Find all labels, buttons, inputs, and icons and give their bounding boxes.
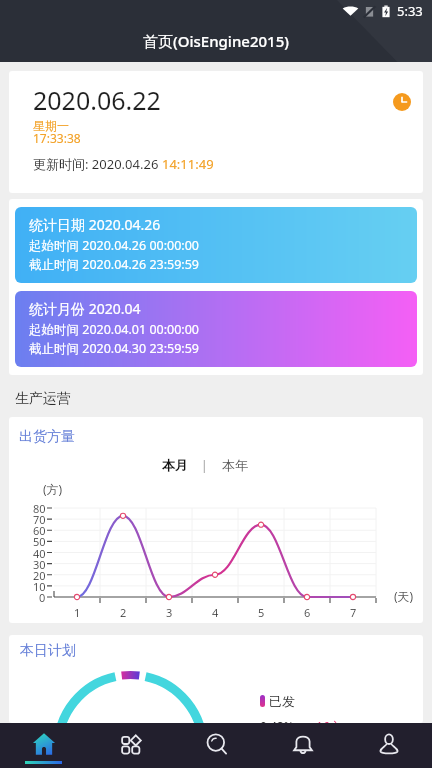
staticText: 本月 bbox=[162, 457, 188, 473]
staticText: 80 bbox=[33, 501, 46, 516]
staticText: 已发 bbox=[269, 693, 295, 709]
button[interactable]: Apps bbox=[87, 723, 174, 768]
staticText: 50 bbox=[33, 534, 46, 549]
staticText: 首页(OisEngine2015) bbox=[143, 31, 289, 51]
staticText: 10 bbox=[33, 579, 46, 594]
staticText: (天) bbox=[394, 588, 414, 604]
staticText: 17:33:38 bbox=[33, 130, 81, 146]
staticText: 70 bbox=[33, 512, 46, 527]
button[interactable]: 本月 bbox=[156, 454, 201, 476]
staticText: 14:11:49 bbox=[162, 155, 214, 173]
staticText: (方) bbox=[43, 481, 63, 497]
staticText: 3 bbox=[166, 605, 173, 620]
staticText: 星期一 bbox=[33, 118, 69, 133]
staticText: 0 bbox=[39, 590, 46, 605]
staticText: 截止时间 2020.04.26 23:59:59 bbox=[29, 256, 200, 273]
button[interactable]: 统计月份 2020.04 bbox=[15, 291, 417, 367]
button[interactable]: Clock bbox=[393, 93, 411, 111]
staticText: 1 bbox=[74, 605, 81, 620]
button[interactable]: Home bbox=[0, 723, 87, 768]
button[interactable]: 2020.06.22 bbox=[9, 71, 423, 193]
button[interactable]: Search bbox=[174, 723, 260, 768]
staticText: 4 bbox=[212, 605, 219, 620]
button[interactable]: 出货方量 bbox=[19, 428, 75, 446]
staticText: 0.43% bbox=[260, 718, 294, 723]
button[interactable]: 统计日期 2020.04.26 bbox=[15, 207, 417, 283]
staticText: 截止时间 2020.04.30 23:59:59 bbox=[29, 340, 200, 357]
staticText: 16方 bbox=[316, 718, 342, 723]
staticText: | bbox=[201, 457, 208, 473]
staticText: 统计日期 2020.04.26 bbox=[29, 215, 161, 234]
staticText: 5:33 bbox=[397, 2, 423, 20]
staticText: 统计月份 2020.04 bbox=[29, 299, 141, 318]
staticText: 更新时间: 2020.04.26 bbox=[33, 155, 162, 173]
staticText: 60 bbox=[33, 523, 46, 538]
button[interactable]: Profile bbox=[346, 723, 432, 768]
staticText: 2 bbox=[120, 605, 127, 620]
button[interactable]: 本年 bbox=[208, 454, 254, 476]
button[interactable]: 本日计划 bbox=[20, 642, 76, 660]
staticText: 30 bbox=[33, 557, 46, 572]
staticText: 生产运营 bbox=[15, 390, 71, 408]
staticText: 2020.06.22 bbox=[33, 83, 161, 117]
staticText: 7 bbox=[350, 605, 357, 620]
staticText: 5 bbox=[258, 605, 265, 620]
staticText: 6 bbox=[304, 605, 311, 620]
staticText: 起始时间 2020.04.01 00:00:00 bbox=[29, 321, 200, 338]
staticText: 20 bbox=[33, 568, 46, 583]
staticText: 起始时间 2020.04.26 00:00:00 bbox=[29, 237, 200, 254]
button[interactable]: Notifications bbox=[260, 723, 346, 768]
staticText: 本年 bbox=[222, 457, 248, 473]
staticText: 40 bbox=[33, 546, 46, 561]
